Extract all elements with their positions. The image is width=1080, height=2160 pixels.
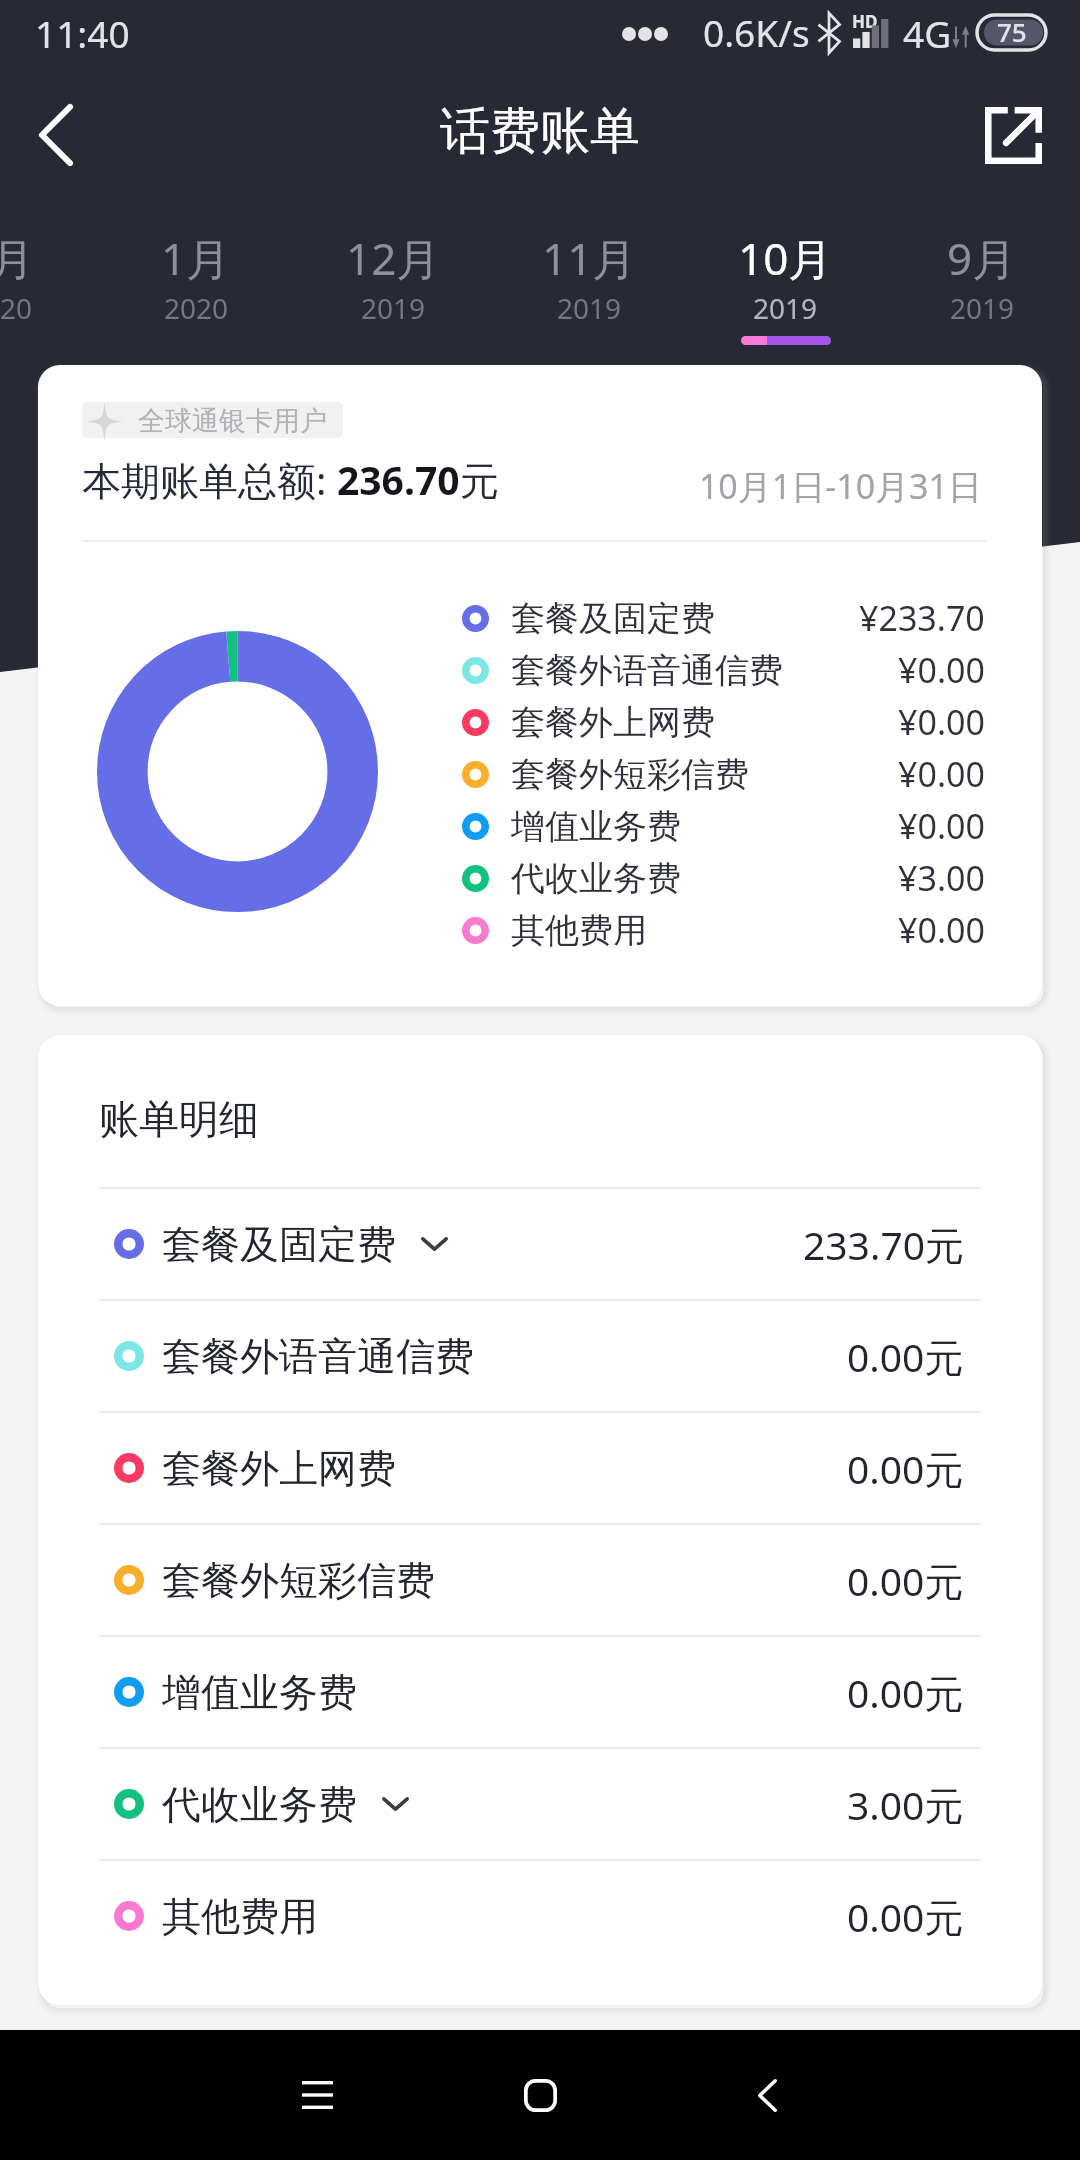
button[interactable]: 套餐外短彩信费 <box>462 748 985 800</box>
staticText: 2月 <box>0 228 35 288</box>
staticText: 其他费用 <box>511 909 647 952</box>
staticText: 12月 <box>346 228 441 288</box>
staticText: 全球通银卡用户 <box>138 404 327 438</box>
button[interactable]: 1月 <box>98 228 294 363</box>
staticText: 233.70元 <box>803 1218 964 1271</box>
staticText: 2019 <box>950 289 1015 327</box>
staticText: 代收业务费 <box>511 857 681 900</box>
button[interactable]: 10月 <box>687 228 883 363</box>
staticText: 2019 <box>557 289 622 327</box>
staticText: 75 <box>997 14 1027 49</box>
staticText: 11月 <box>542 228 637 288</box>
staticText: 套餐外上网费 <box>162 1444 396 1493</box>
staticText: 账单明细 <box>99 1094 259 1144</box>
button[interactable]: 增值业务费 <box>38 1637 1042 1747</box>
button[interactable]: 套餐外上网费 <box>462 696 985 748</box>
button[interactable]: 11月 <box>491 228 687 363</box>
staticText: 0.6K/s <box>703 7 810 57</box>
button[interactable]: 代收业务费 <box>462 852 985 904</box>
staticText: 增值业务费 <box>511 805 681 848</box>
staticText: 代收业务费 <box>162 1780 357 1829</box>
staticText: 2019 <box>361 289 426 327</box>
staticText: 其他费用 <box>162 1892 318 1941</box>
staticText: ¥0.00 <box>898 699 985 745</box>
staticText: ¥3.00 <box>898 855 985 901</box>
staticText: 9月 <box>947 228 1017 288</box>
staticText: 11:40 <box>35 8 130 58</box>
staticText: 236.70 <box>337 453 460 506</box>
staticText: ¥0.00 <box>898 907 985 953</box>
button[interactable]: Home <box>480 2035 600 2155</box>
staticText: ¥0.00 <box>898 751 985 797</box>
staticText: 套餐外语音通信费 <box>511 649 783 692</box>
button[interactable]: Back <box>707 2035 827 2155</box>
staticText: 套餐外语音通信费 <box>162 1332 474 1381</box>
staticText: 0.00元 <box>847 1554 964 1607</box>
button[interactable]: 增值业务费 <box>462 800 985 852</box>
staticText: 10月1日-10月31日 <box>676 463 982 509</box>
staticText: 0.00元 <box>847 1330 964 1383</box>
staticText: 话费账单 <box>440 100 640 163</box>
button[interactable]: 其他费用 <box>462 904 985 956</box>
staticText: 4G <box>903 8 952 58</box>
staticText: 套餐外上网费 <box>511 701 715 744</box>
staticText: 0.00元 <box>847 1666 964 1719</box>
button[interactable]: 2月 <box>0 228 98 363</box>
staticText: ¥233.70 <box>859 595 985 641</box>
button[interactable]: 12月 <box>295 228 491 363</box>
staticText: 10月 <box>738 228 833 288</box>
staticText: 3.00元 <box>847 1778 964 1831</box>
button[interactable]: 其他费用 <box>38 1861 1042 1971</box>
staticText: 套餐外短彩信费 <box>511 753 749 796</box>
staticText: 0.00元 <box>847 1890 964 1943</box>
staticText: 1月 <box>161 228 231 288</box>
staticText: 增值业务费 <box>162 1668 357 1717</box>
staticText: 2020 <box>164 289 229 327</box>
button[interactable]: Back <box>1 80 111 190</box>
button[interactable]: Share <box>958 80 1068 190</box>
button[interactable]: 套餐外上网费 <box>38 1413 1042 1523</box>
button[interactable]: 套餐及固定费 <box>38 1189 1042 1299</box>
staticText: ¥0.00 <box>898 647 985 693</box>
button[interactable]: Recent apps <box>257 2035 377 2155</box>
staticText: 本期账单总额: <box>82 453 337 506</box>
button[interactable]: 代收业务费 <box>38 1749 1042 1859</box>
staticText: HD <box>852 10 878 33</box>
button[interactable]: 套餐外语音通信费 <box>38 1301 1042 1411</box>
button[interactable]: 9月 <box>884 228 1080 363</box>
button[interactable]: 套餐及固定费 <box>462 592 985 644</box>
staticText: 套餐及固定费 <box>162 1220 396 1269</box>
staticText: ¥0.00 <box>898 803 985 849</box>
button[interactable]: 套餐外语音通信费 <box>462 644 985 696</box>
staticText: 2019 <box>753 289 818 327</box>
button[interactable]: 套餐外短彩信费 <box>38 1525 1042 1635</box>
staticText: 2020 <box>0 289 33 327</box>
staticText: 套餐外短彩信费 <box>162 1556 435 1605</box>
staticText: 套餐及固定费 <box>511 597 715 640</box>
staticText: 0.00元 <box>847 1442 964 1495</box>
staticText: 元 <box>460 457 499 506</box>
